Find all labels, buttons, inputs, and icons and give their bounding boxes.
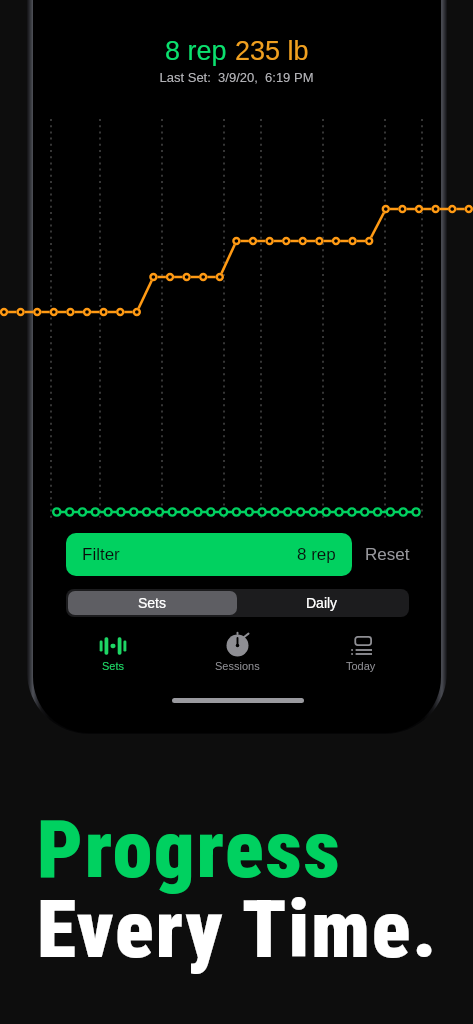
button[interactable]: Reset [360,533,415,576]
button[interactable]: Filter [66,533,352,576]
staticText: Today [346,660,376,672]
staticText: Daily [306,595,338,611]
staticText: Sessions [215,660,260,672]
staticText: Filter [82,545,120,564]
button[interactable]: Today [321,634,401,682]
button[interactable]: Daily [237,591,407,615]
staticText: Reset [365,545,410,564]
staticText: 8 rep [165,36,235,66]
button[interactable]: Sessions [197,634,277,682]
staticText: Every Time. [37,883,439,977]
staticText: 235 lb [235,36,309,66]
button[interactable]: Sets [73,634,153,682]
staticText: Last Set: 3/9/20, 6:19 PM [0,70,473,85]
staticText: Sets [102,660,125,672]
staticText: Sets [138,595,167,611]
staticText: 8 rep [297,545,336,564]
button[interactable]: Sets [68,591,237,615]
staticText: Progress [37,803,342,897]
